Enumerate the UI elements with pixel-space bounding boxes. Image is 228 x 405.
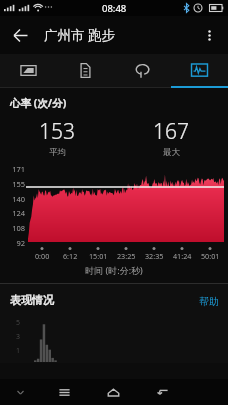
staticText: 15:01 (89, 251, 108, 261)
staticText: 171 (0, 164, 25, 174)
staticText: 50:01 (201, 251, 220, 261)
staticText: 时间 (时:分:秒) (0, 264, 228, 276)
staticText: 140 (0, 194, 25, 204)
staticText: 23:25 (117, 251, 136, 261)
button[interactable]: Recent apps (40, 379, 89, 405)
button[interactable]: 帮助 (190, 293, 228, 310)
staticText: 32:35 (145, 251, 164, 261)
staticText: 1 (2, 346, 20, 356)
staticText: 表现情况 (10, 293, 54, 307)
button[interactable]: Hide navigation bar (0, 379, 40, 405)
button[interactable]: Back (138, 379, 187, 405)
staticText: 5 (2, 318, 20, 328)
button[interactable]: Home (89, 379, 138, 405)
button[interactable]: Heart rate chart (171, 54, 228, 88)
staticText: 6:12 (63, 251, 78, 261)
staticText: 155 (0, 179, 25, 189)
staticText: 124 (0, 208, 25, 218)
button[interactable]: Back (5, 20, 35, 50)
staticText: 3 (2, 332, 20, 342)
button[interactable]: More options (194, 20, 224, 50)
staticText: 108 (0, 223, 25, 233)
staticText: 153 (39, 117, 75, 146)
button[interactable]: Details (57, 54, 114, 88)
button[interactable]: Laps (114, 54, 171, 88)
button[interactable]: Map (0, 54, 57, 88)
staticText: 92 (0, 238, 25, 248)
staticText: 0:00 (35, 251, 50, 261)
staticText: 41:24 (173, 251, 192, 261)
staticText: 167 (153, 117, 189, 146)
staticText: 心率 (次/分) (10, 96, 67, 110)
staticText: 帮助 (199, 295, 219, 308)
staticText: 广州市 跑步 (44, 26, 116, 44)
staticText: 08:48 (102, 2, 127, 15)
staticText: 平均 (49, 147, 66, 158)
staticText: 最大 (163, 147, 180, 158)
